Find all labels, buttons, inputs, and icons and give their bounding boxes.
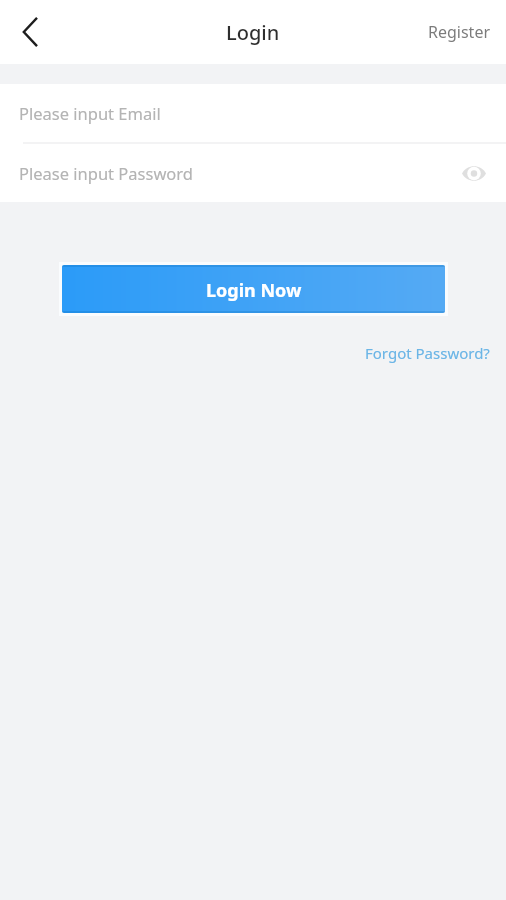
button[interactable]: Please input Password [0, 144, 506, 202]
button[interactable]: Forgot Password? [347, 339, 506, 371]
staticText: Login Now [206, 278, 302, 303]
staticText: Please input Email [19, 102, 161, 124]
staticText: Forgot Password? [365, 343, 490, 363]
button[interactable]: Please input Email [0, 84, 506, 142]
button[interactable]: Show password [452, 151, 496, 195]
button[interactable]: Back [0, 0, 56, 64]
button[interactable]: Register [410, 3, 506, 61]
staticText: Register [428, 21, 491, 43]
staticText: Login [226, 19, 280, 46]
staticText: Please input Password [19, 162, 193, 184]
button[interactable]: Login Now [62, 265, 445, 313]
